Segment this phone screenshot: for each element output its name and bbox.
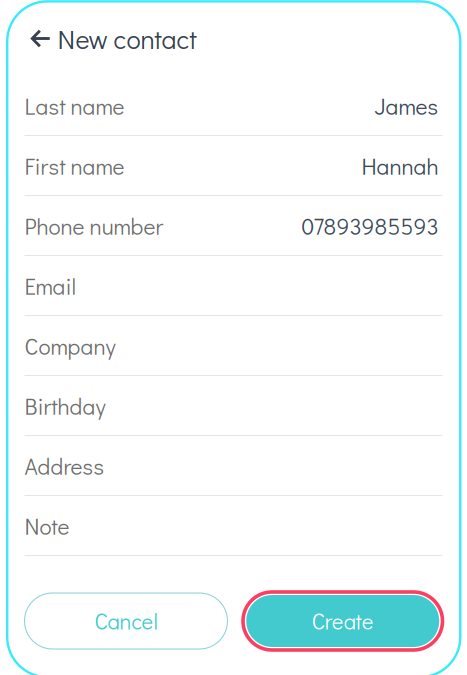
staticText: Company	[24, 331, 115, 361]
staticText: Birthday	[24, 391, 105, 421]
staticText: James	[374, 91, 438, 121]
button[interactable]: Back	[24, 14, 55, 62]
staticText: New contact	[57, 21, 196, 56]
staticText: Email	[24, 271, 76, 301]
staticText: Create	[312, 607, 374, 635]
staticText: Last name	[24, 91, 124, 121]
staticText: Cancel	[94, 607, 157, 635]
staticText: Address	[24, 451, 104, 481]
staticText: Note	[24, 511, 69, 541]
button[interactable]: Create	[246, 595, 439, 647]
staticText: Phone number	[24, 211, 163, 241]
staticText: 07893985593	[301, 211, 438, 241]
staticText: Hannah	[361, 151, 438, 181]
button[interactable]: Cancel	[24, 593, 227, 649]
staticText: First name	[24, 151, 124, 181]
